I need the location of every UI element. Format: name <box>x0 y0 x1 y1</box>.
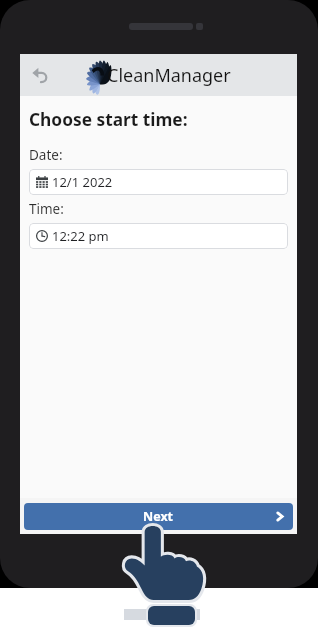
staticText: CleanManager <box>107 63 231 88</box>
button[interactable]: Next <box>24 503 293 530</box>
staticText: 12/1 2022 <box>52 173 113 191</box>
staticText: Choose start time: <box>29 108 188 132</box>
staticText: Time: <box>29 200 64 218</box>
staticText: Next <box>143 508 174 525</box>
button[interactable]: 12/1 2022 <box>29 169 288 195</box>
button[interactable]: 12:22 pm <box>29 223 288 249</box>
button[interactable]: Back <box>27 62 53 88</box>
staticText: 12:22 pm <box>52 227 109 245</box>
staticText: Date: <box>29 146 63 164</box>
